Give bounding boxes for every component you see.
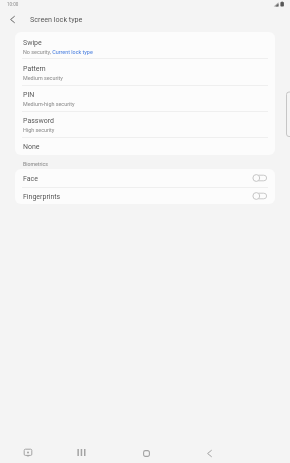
staticText: Biometrics [23,161,48,167]
button[interactable]: Swipe [15,32,275,58]
button[interactable]: PIN [15,86,275,111]
button[interactable]: None [15,138,275,155]
staticText: 10:00 [7,2,19,7]
staticText: Screen lock type [30,15,83,23]
button[interactable]: Face [15,169,275,187]
staticText: No security, Current lock type [23,49,93,55]
button[interactable] [5,12,19,26]
staticText: Pattern [23,65,46,73]
button[interactable] [21,446,35,460]
staticText: Medium-high security [23,101,75,107]
staticText: Password [23,117,54,125]
staticText: Medium security [23,75,63,81]
staticText: Face [23,175,38,183]
staticText: Swipe [23,39,42,47]
button[interactable]: Fingerprints [15,188,275,204]
button[interactable]: Pattern [15,59,275,85]
button[interactable] [75,446,88,459]
button[interactable] [140,447,153,460]
button[interactable] [203,447,215,459]
staticText: None [23,143,40,151]
staticText: PIN [23,91,35,99]
staticText: Fingerprints [23,193,61,201]
staticText: High security [23,127,55,133]
button[interactable]: Password [15,112,275,137]
